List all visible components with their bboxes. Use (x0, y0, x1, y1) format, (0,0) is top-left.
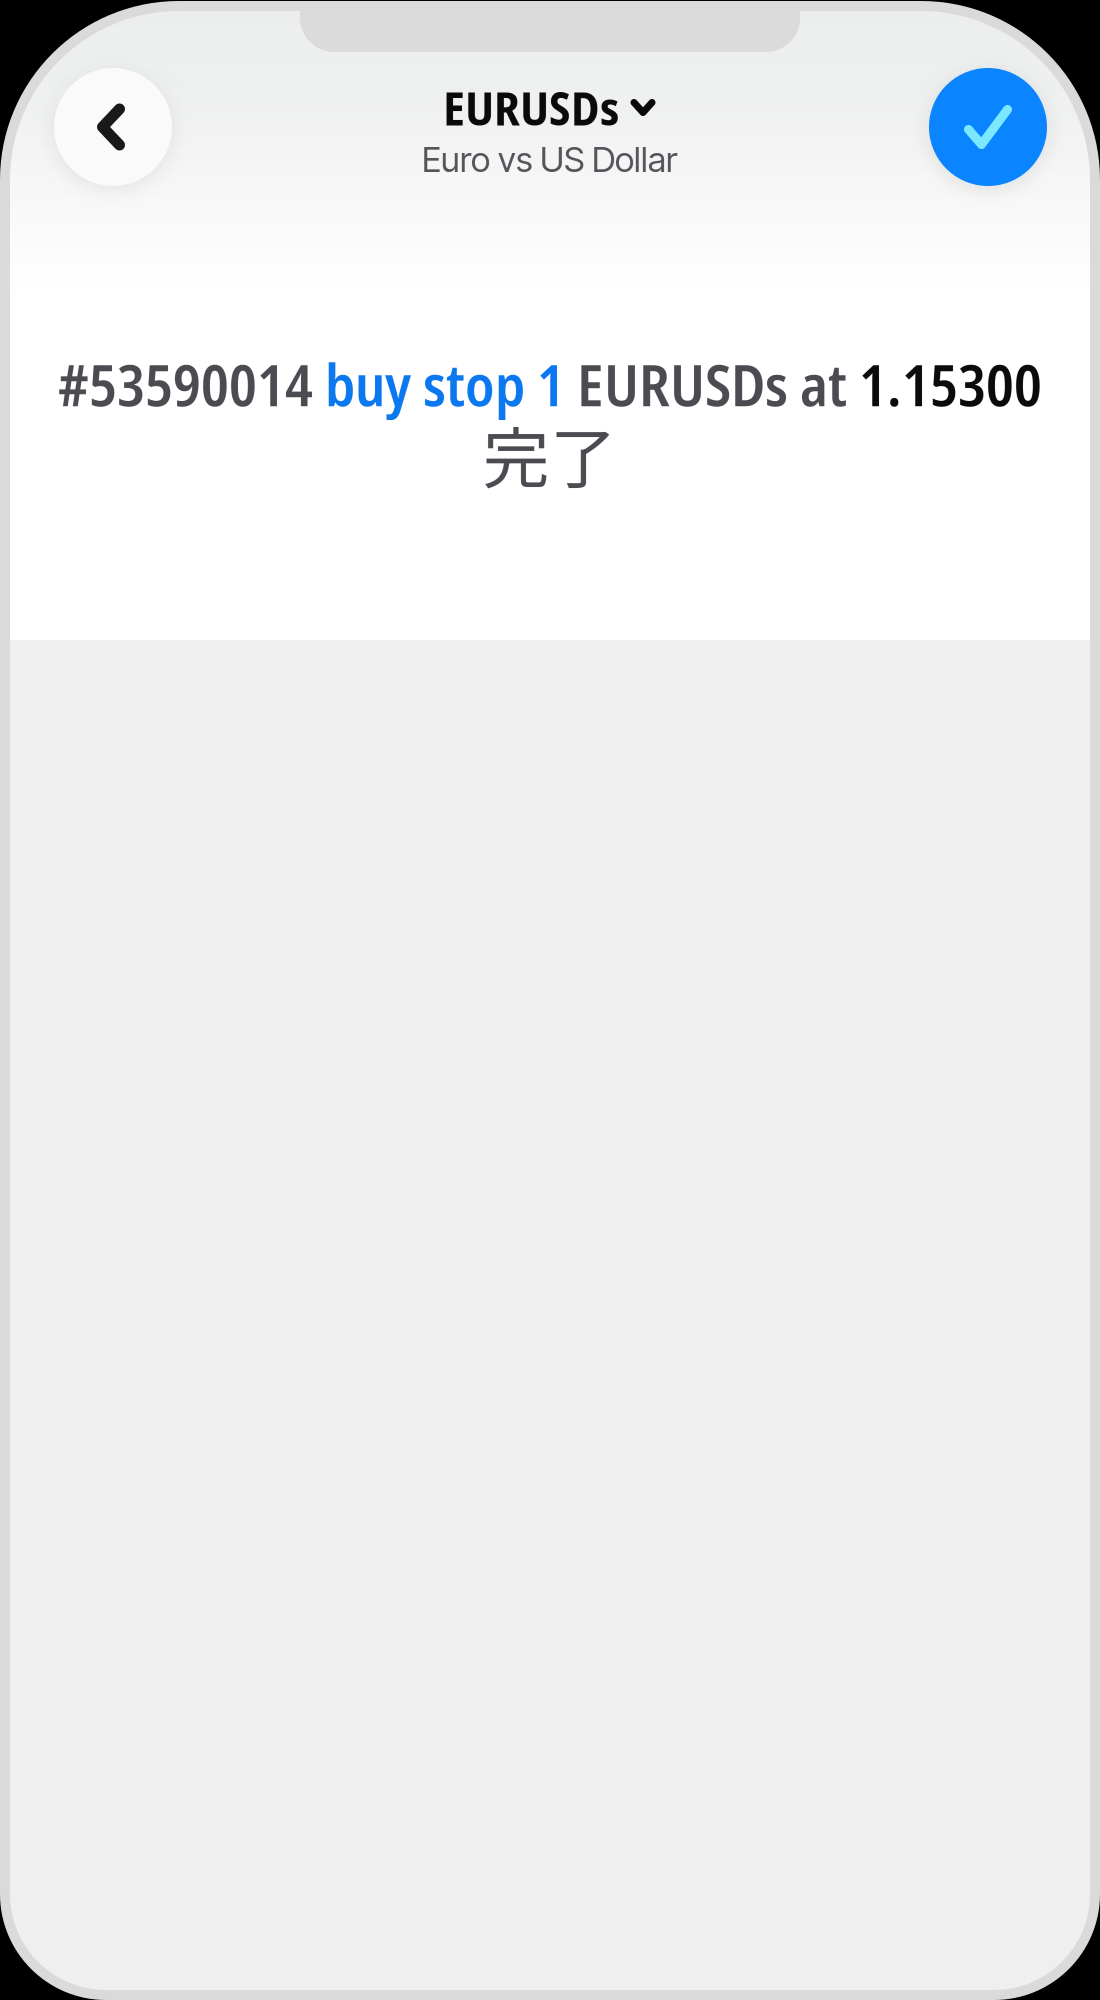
button[interactable]: Confirm (929, 68, 1047, 186)
button[interactable]: EURUSDs (423, 84, 678, 169)
staticText: 完了 (483, 406, 617, 502)
staticText: EURUSDs (443, 76, 619, 139)
staticText: Euro vs US Dollar (422, 138, 677, 180)
staticText: #53590014 buy stop 1 EURUSDs at 1.15300 (58, 346, 1042, 422)
button[interactable]: Back (54, 68, 172, 186)
